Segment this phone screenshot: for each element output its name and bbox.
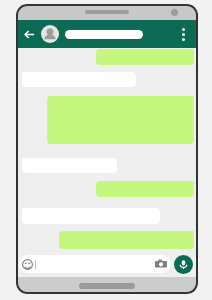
button[interactable]: Message input xyxy=(19,255,171,273)
button[interactable]: More options xyxy=(174,25,192,43)
button[interactable]: Camera xyxy=(154,257,168,271)
button[interactable]: Sent message xyxy=(96,181,194,197)
button[interactable]: Contact avatar xyxy=(41,25,59,43)
button[interactable]: Sent message xyxy=(47,96,194,144)
button[interactable]: Sent message xyxy=(59,231,194,249)
button[interactable]: Voice message xyxy=(174,255,193,274)
button[interactable]: Home gesture bar xyxy=(79,283,135,289)
button[interactable]: Sent message xyxy=(96,49,194,65)
button[interactable]: Back xyxy=(21,26,37,42)
